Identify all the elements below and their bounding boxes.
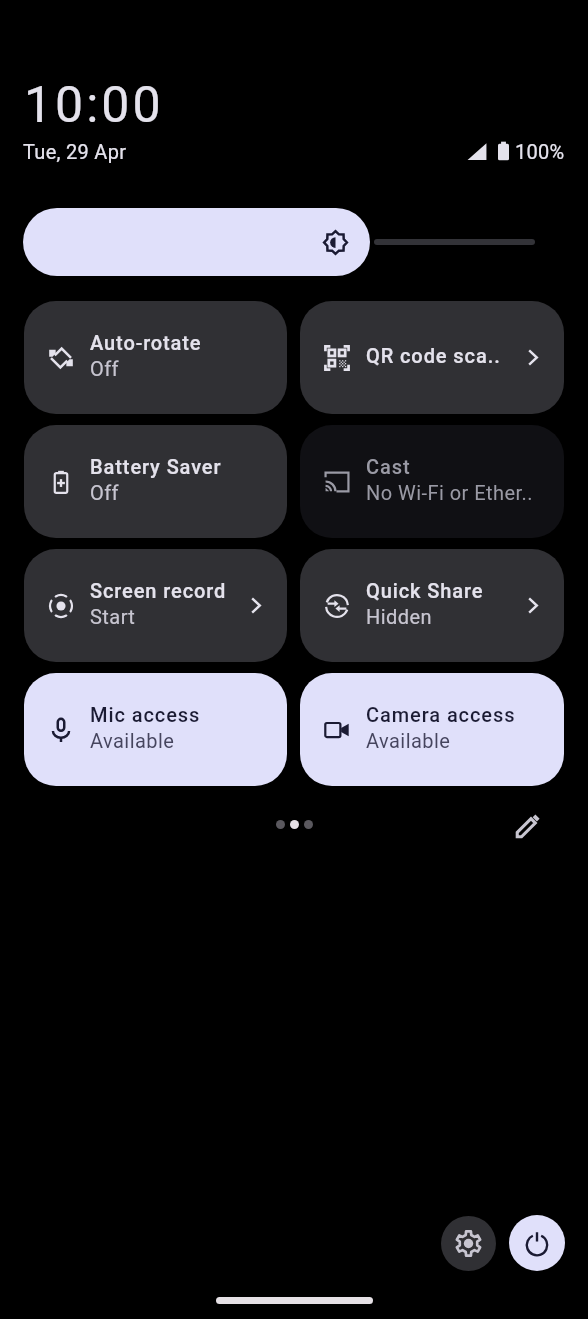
button[interactable]: Power <box>509 1215 565 1271</box>
button[interactable]: Mic access <box>24 673 287 786</box>
staticText: Available <box>90 729 175 752</box>
staticText: No Wi-Fi or Ether.. <box>366 481 533 504</box>
staticText: QR code sca.. <box>366 344 501 367</box>
staticText: Auto-rotate <box>90 331 202 354</box>
staticText: Camera access <box>366 703 516 726</box>
staticText: Mic access <box>90 703 201 726</box>
staticText: Off <box>90 357 120 380</box>
button[interactable]: Brightness <box>23 208 370 276</box>
button[interactable]: QR code sca.. <box>300 301 564 414</box>
staticText: Off <box>90 481 120 504</box>
button[interactable]: Screen record <box>24 549 287 662</box>
staticText: Start <box>90 605 136 628</box>
staticText: Cast <box>366 455 411 478</box>
staticText: Screen record <box>90 579 227 602</box>
button[interactable]: Cast <box>300 425 564 538</box>
button[interactable]: Edit tiles <box>508 805 548 845</box>
button[interactable]: Battery Saver <box>24 425 287 538</box>
button[interactable]: Quick Share <box>300 549 564 662</box>
staticText: Tue, 29 Apr <box>23 140 127 163</box>
staticText: Hidden <box>366 605 433 628</box>
button[interactable]: Open Settings <box>441 1216 496 1271</box>
button[interactable]: Camera access <box>300 673 564 786</box>
button[interactable]: Auto-rotate <box>24 301 287 414</box>
staticText: Available <box>366 729 451 752</box>
staticText: 100% <box>515 140 565 163</box>
staticText: Quick Share <box>366 579 484 602</box>
staticText: 10:00 <box>24 76 164 135</box>
staticText: Battery Saver <box>90 455 222 478</box>
